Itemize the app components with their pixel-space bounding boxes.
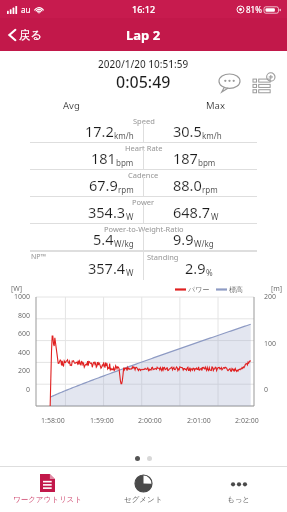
staticText: bpm bbox=[116, 157, 134, 168]
staticText: 2:02:00 bbox=[235, 416, 259, 426]
staticText: 標高 bbox=[229, 285, 243, 294]
staticText: 30.5 bbox=[173, 121, 202, 141]
staticText: W bbox=[126, 267, 134, 278]
staticText: Power bbox=[132, 197, 155, 207]
staticText: 100 bbox=[264, 339, 277, 349]
staticText: W bbox=[126, 211, 134, 222]
staticText: 9.9 bbox=[173, 229, 194, 249]
button[interactable]: もっと bbox=[191, 466, 287, 512]
staticText: 400 bbox=[6, 348, 30, 358]
staticText: [W] bbox=[11, 284, 23, 294]
staticText: 2:01:00 bbox=[187, 416, 211, 426]
staticText: 2020/1/20 10:51:59 bbox=[98, 57, 189, 71]
staticText: 2:00:00 bbox=[138, 416, 162, 426]
staticText: Heart Rate bbox=[125, 143, 163, 153]
staticText: Lap 2 bbox=[126, 26, 161, 44]
staticText: 戻る bbox=[19, 28, 43, 42]
staticText: 16:12 bbox=[132, 3, 156, 15]
staticText: NP™ bbox=[31, 252, 46, 262]
staticText: 181 bbox=[91, 148, 116, 168]
staticText: 81% bbox=[246, 4, 262, 15]
button[interactable]: セグメント bbox=[95, 466, 191, 512]
staticText: 648.7 bbox=[173, 202, 211, 222]
button[interactable]: Add to list bbox=[250, 68, 278, 96]
staticText: 67.9 bbox=[89, 175, 118, 195]
staticText: 1000 bbox=[6, 292, 30, 302]
staticText: rpm bbox=[118, 184, 134, 195]
staticText: 354.3 bbox=[88, 202, 126, 222]
staticText: ワークアウトリスト bbox=[13, 495, 82, 504]
staticText: bpm bbox=[198, 157, 216, 168]
staticText: 200 bbox=[6, 366, 30, 376]
staticText: km/h bbox=[202, 130, 222, 141]
staticText: W bbox=[211, 211, 219, 222]
staticText: 1:58:00 bbox=[41, 416, 65, 426]
button[interactable]: ワークアウトリスト bbox=[0, 466, 95, 512]
staticText: 0 bbox=[264, 385, 269, 395]
button[interactable]: 戻る bbox=[5, 23, 46, 47]
staticText: 2.9 bbox=[185, 258, 206, 278]
staticText: Power-to-Weight-Ratio bbox=[104, 224, 184, 234]
staticText: W/kg bbox=[194, 238, 214, 249]
staticText: 200 bbox=[264, 292, 277, 302]
staticText: Standing bbox=[147, 252, 179, 262]
staticText: Max bbox=[206, 99, 225, 112]
staticText: 1:59:00 bbox=[90, 416, 114, 426]
staticText: セグメント bbox=[124, 495, 163, 504]
staticText: W/kg bbox=[114, 238, 134, 249]
staticText: もっと bbox=[227, 495, 251, 504]
staticText: 187 bbox=[173, 148, 198, 168]
staticText: パワー bbox=[188, 285, 210, 294]
staticText: 800 bbox=[6, 311, 30, 321]
staticText: Speed bbox=[133, 116, 155, 126]
staticText: 88.0 bbox=[173, 175, 202, 195]
staticText: 0:05:49 bbox=[116, 71, 171, 93]
staticText: 17.2 bbox=[85, 121, 114, 141]
staticText: Avg bbox=[63, 99, 80, 112]
staticText: 0 bbox=[6, 385, 30, 395]
staticText: rpm bbox=[202, 184, 218, 195]
button[interactable]: Comments bbox=[216, 69, 243, 96]
staticText: % bbox=[206, 267, 213, 278]
staticText: au bbox=[21, 4, 31, 15]
staticText: [m] bbox=[271, 284, 283, 294]
staticText: 600 bbox=[6, 329, 30, 339]
staticText: 5.4 bbox=[93, 229, 114, 249]
staticText: 357.4 bbox=[88, 258, 126, 278]
staticText: km/h bbox=[114, 130, 134, 141]
staticText: Cadence bbox=[128, 170, 159, 180]
